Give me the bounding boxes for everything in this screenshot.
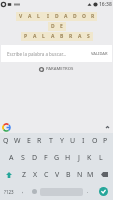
staticText: B — [66, 170, 71, 180]
staticText: E — [27, 136, 31, 146]
button[interactable]: G — [51, 149, 62, 166]
staticText: P — [103, 136, 108, 146]
staticText: I — [47, 13, 49, 20]
button[interactable]: X — [30, 166, 41, 183]
staticText: N — [77, 170, 83, 180]
staticText: ?123 — [4, 189, 14, 195]
staticText: A — [64, 13, 68, 20]
button[interactable]: Space — [40, 183, 83, 200]
staticText: I — [82, 136, 85, 146]
staticText: Y — [60, 136, 64, 146]
staticText: L — [42, 33, 45, 40]
button[interactable]: VALIDAR — [87, 51, 112, 56]
button[interactable]: A — [5, 149, 17, 166]
button[interactable]: C — [41, 166, 52, 183]
button[interactable]: V — [52, 166, 63, 183]
staticText: R — [37, 136, 42, 146]
button[interactable]: Z — [18, 166, 30, 183]
button[interactable]: T — [45, 133, 56, 149]
button[interactable]: H — [62, 149, 73, 166]
button[interactable]: E — [23, 133, 34, 149]
staticText: W — [14, 136, 21, 146]
staticText: B — [60, 33, 64, 40]
button[interactable]: D — [29, 149, 40, 166]
staticText: V — [55, 170, 60, 180]
staticText: S — [21, 153, 25, 163]
staticText: A — [51, 33, 55, 40]
button[interactable]: Enter — [93, 183, 113, 200]
button[interactable]: Y — [56, 133, 67, 149]
staticText: J — [78, 153, 80, 163]
staticText: L — [99, 153, 103, 163]
staticText: F — [44, 153, 48, 163]
button[interactable]: F — [40, 149, 51, 166]
staticText: . — [87, 188, 89, 195]
staticText: K — [87, 153, 92, 163]
staticText: M — [87, 170, 94, 180]
staticText: PARAMETROS — [46, 66, 74, 72]
staticText: R — [91, 13, 95, 20]
staticText: A — [9, 153, 14, 163]
staticText: H — [65, 153, 71, 163]
button[interactable]: Backspace — [96, 166, 113, 183]
button[interactable]: U — [67, 133, 78, 149]
button[interactable]: Comma — [18, 183, 28, 200]
button[interactable]: PARAMETROS — [0, 64, 113, 74]
staticText: D — [55, 13, 59, 20]
staticText: X — [33, 170, 38, 180]
staticText: 16:38 — [99, 1, 112, 8]
staticText: A — [78, 33, 82, 40]
staticText: O — [92, 136, 98, 146]
button[interactable]: B — [63, 166, 74, 183]
button[interactable]: ?123 — [0, 183, 18, 200]
button[interactable]: R — [34, 133, 45, 149]
staticText: P — [24, 33, 28, 40]
staticText: S — [87, 33, 90, 40]
staticText: Z — [22, 170, 27, 180]
staticText: E — [60, 23, 63, 30]
button[interactable]: N — [74, 166, 85, 183]
staticText: A — [33, 33, 37, 40]
staticText: R — [69, 33, 73, 40]
button[interactable]: P — [100, 133, 111, 149]
staticText: V — [19, 13, 23, 20]
staticText: D — [73, 13, 77, 20]
staticText: T — [49, 136, 53, 146]
staticText: D — [51, 23, 55, 30]
button[interactable]: L — [95, 149, 106, 166]
staticText: C — [44, 170, 49, 180]
staticText: Escribe la palabra a buscar... — [7, 51, 87, 57]
staticText: U — [70, 136, 76, 146]
button[interactable]: M — [85, 166, 96, 183]
staticText: G — [54, 153, 60, 163]
button[interactable]: J — [73, 149, 84, 166]
staticText: O — [82, 13, 86, 20]
staticText: Q — [3, 136, 9, 146]
button[interactable]: K — [84, 149, 95, 166]
staticText: L — [37, 13, 40, 20]
button[interactable]: Emoji — [28, 183, 40, 200]
button[interactable]: W — [12, 133, 23, 149]
staticText: VALIDAR — [91, 51, 108, 56]
button[interactable]: S — [17, 149, 29, 166]
staticText: A — [28, 13, 32, 20]
staticText: , — [22, 188, 24, 195]
button[interactable]: O — [89, 133, 100, 149]
button[interactable]: Shift — [0, 166, 18, 183]
staticText: D — [32, 153, 38, 163]
button[interactable]: Period — [83, 183, 93, 200]
button[interactable]: I — [78, 133, 89, 149]
button[interactable]: Q — [0, 133, 12, 149]
